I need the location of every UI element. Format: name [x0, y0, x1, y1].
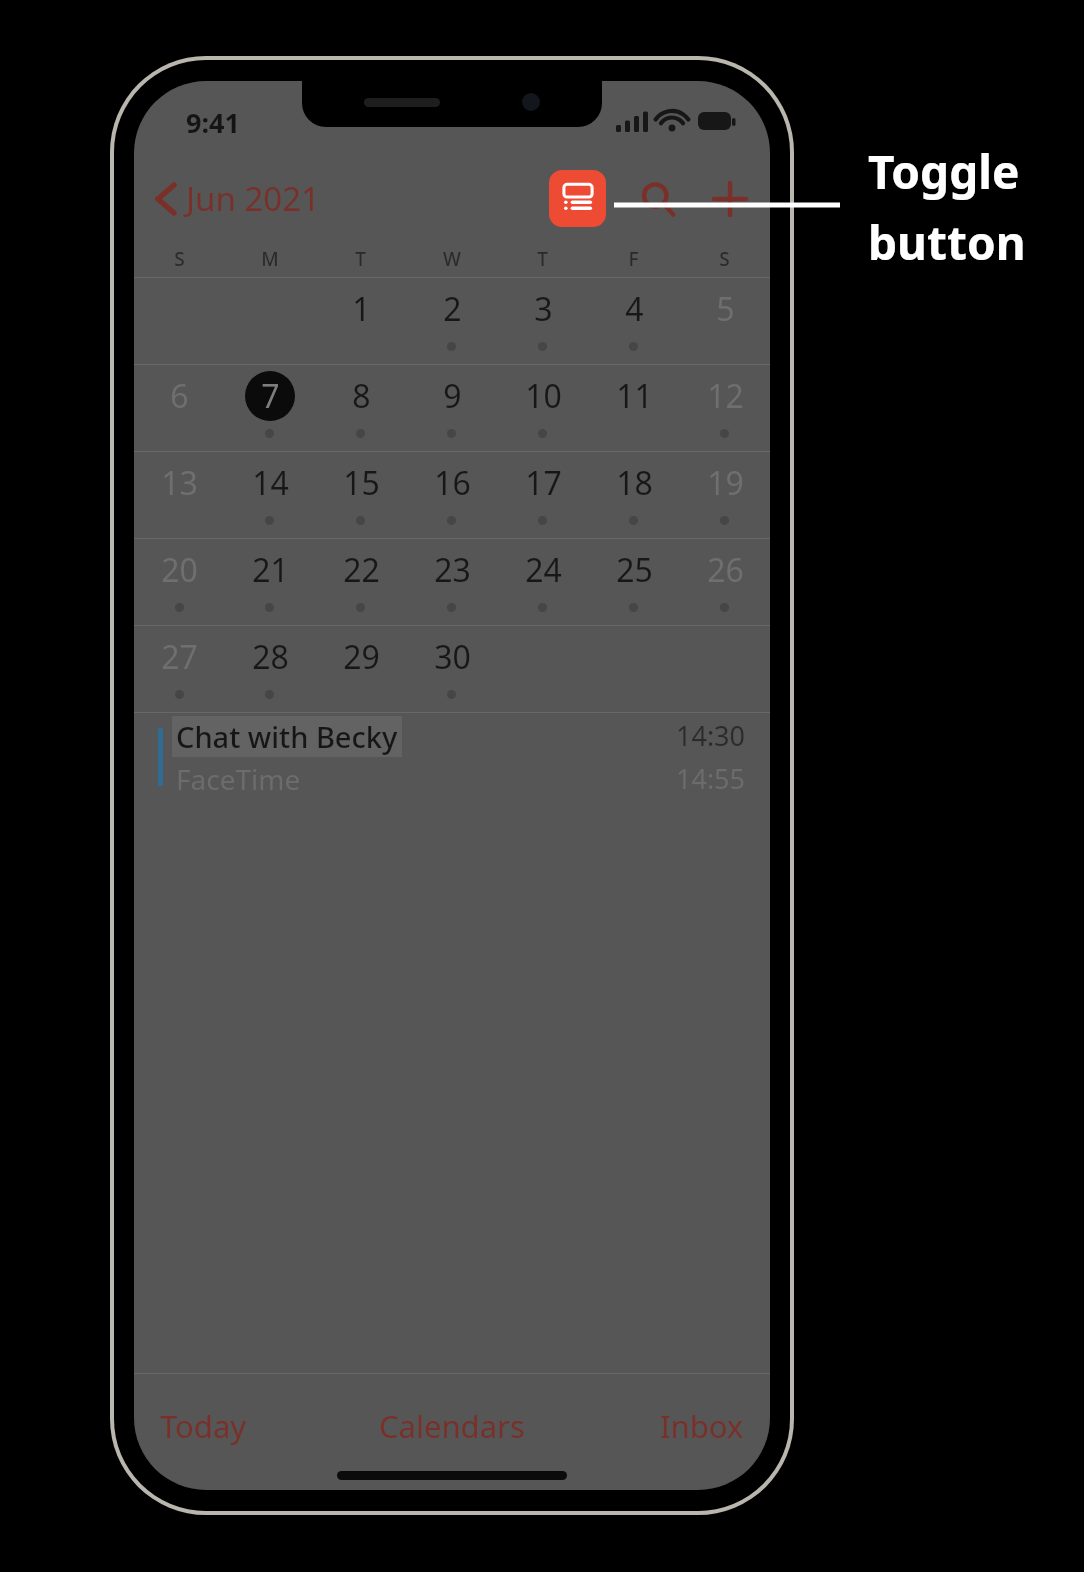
staticText: 24 — [525, 548, 562, 592]
staticText: 19 — [707, 461, 744, 505]
button[interactable]: 25 — [588, 539, 679, 625]
button[interactable]: 12 — [679, 365, 770, 451]
button[interactable]: 16 — [406, 452, 497, 538]
button[interactable]: Chat with Becky — [134, 713, 770, 805]
button[interactable]: 23 — [406, 539, 497, 625]
staticText: 21 — [252, 548, 289, 592]
button[interactable]: 10 — [497, 365, 588, 451]
staticText: 14 — [252, 461, 289, 505]
staticText: 25 — [616, 548, 653, 592]
button[interactable]: 9 — [406, 365, 497, 451]
button[interactable]: 17 — [497, 452, 588, 538]
staticText: 6 — [170, 374, 189, 418]
button[interactable]: 8 — [315, 365, 406, 451]
button[interactable]: 1 — [315, 278, 406, 364]
button[interactable]: Toggle list view — [549, 170, 606, 227]
button[interactable]: 6 — [134, 365, 224, 451]
button[interactable]: 20 — [134, 539, 224, 625]
staticText: 15 — [343, 461, 380, 505]
button[interactable]: Inbox — [646, 1397, 758, 1455]
staticText: 13 — [161, 461, 198, 505]
staticText: 3 — [534, 287, 553, 331]
staticText: 16 — [434, 461, 471, 505]
staticText: Chat with Becky — [176, 717, 398, 756]
button[interactable]: Search — [630, 171, 686, 227]
staticText: 9 — [443, 374, 462, 418]
staticText: 2 — [443, 287, 462, 331]
staticText: Calendars — [379, 1405, 525, 1447]
button[interactable]: 7 — [224, 365, 315, 451]
staticText: 14:30 — [676, 717, 746, 754]
staticText: 27 — [161, 635, 198, 679]
staticText: 23 — [434, 548, 471, 592]
button[interactable]: 4 — [588, 278, 679, 364]
staticText: 12 — [707, 374, 744, 418]
staticText: 17 — [525, 461, 562, 505]
staticText: 18 — [616, 461, 653, 505]
staticText: 8 — [352, 374, 371, 418]
button[interactable]: 22 — [315, 539, 406, 625]
button[interactable]: 24 — [497, 539, 588, 625]
staticText: 5 — [716, 287, 735, 331]
staticText: 11 — [616, 374, 653, 418]
staticText: T — [537, 246, 548, 272]
staticText: F — [628, 246, 639, 272]
staticText: 1 — [352, 287, 371, 331]
staticText: 7 — [261, 374, 280, 418]
button[interactable]: 29 — [315, 626, 406, 712]
staticText: 26 — [707, 548, 744, 592]
staticText: FaceTime — [176, 760, 301, 798]
button[interactable]: Calendars — [365, 1397, 539, 1455]
staticText: 14:55 — [676, 760, 746, 797]
staticText: Inbox — [660, 1405, 744, 1447]
staticText: Today — [160, 1405, 247, 1447]
button[interactable]: Add event — [702, 171, 758, 227]
button[interactable]: 15 — [315, 452, 406, 538]
button[interactable]: Jun 2021 — [144, 168, 332, 229]
staticText: M — [261, 246, 279, 272]
button[interactable]: 11 — [588, 365, 679, 451]
staticText: 10 — [525, 374, 562, 418]
button[interactable]: 28 — [224, 626, 315, 712]
staticText: T — [355, 246, 366, 272]
staticText: Jun 2021 — [186, 176, 320, 221]
staticText: 30 — [434, 635, 471, 679]
button[interactable]: 30 — [406, 626, 497, 712]
staticText: 22 — [343, 548, 380, 592]
staticText: S — [719, 246, 730, 272]
button[interactable]: Today — [146, 1397, 261, 1455]
staticText: 4 — [625, 287, 644, 331]
button[interactable]: 26 — [679, 539, 770, 625]
staticText: 29 — [343, 635, 380, 679]
button[interactable]: 21 — [224, 539, 315, 625]
staticText: S — [174, 246, 185, 272]
staticText: button — [868, 211, 1026, 274]
staticText: Toggle — [868, 140, 1020, 203]
staticText: 9:41 — [186, 104, 240, 141]
button[interactable]: 19 — [679, 452, 770, 538]
button[interactable]: 2 — [406, 278, 497, 364]
button[interactable]: 13 — [134, 452, 224, 538]
staticText: W — [443, 246, 461, 272]
staticText: 20 — [161, 548, 198, 592]
button[interactable]: 3 — [497, 278, 588, 364]
button[interactable]: 27 — [134, 626, 224, 712]
button[interactable]: 14 — [224, 452, 315, 538]
staticText: 28 — [252, 635, 289, 679]
button[interactable]: 18 — [588, 452, 679, 538]
